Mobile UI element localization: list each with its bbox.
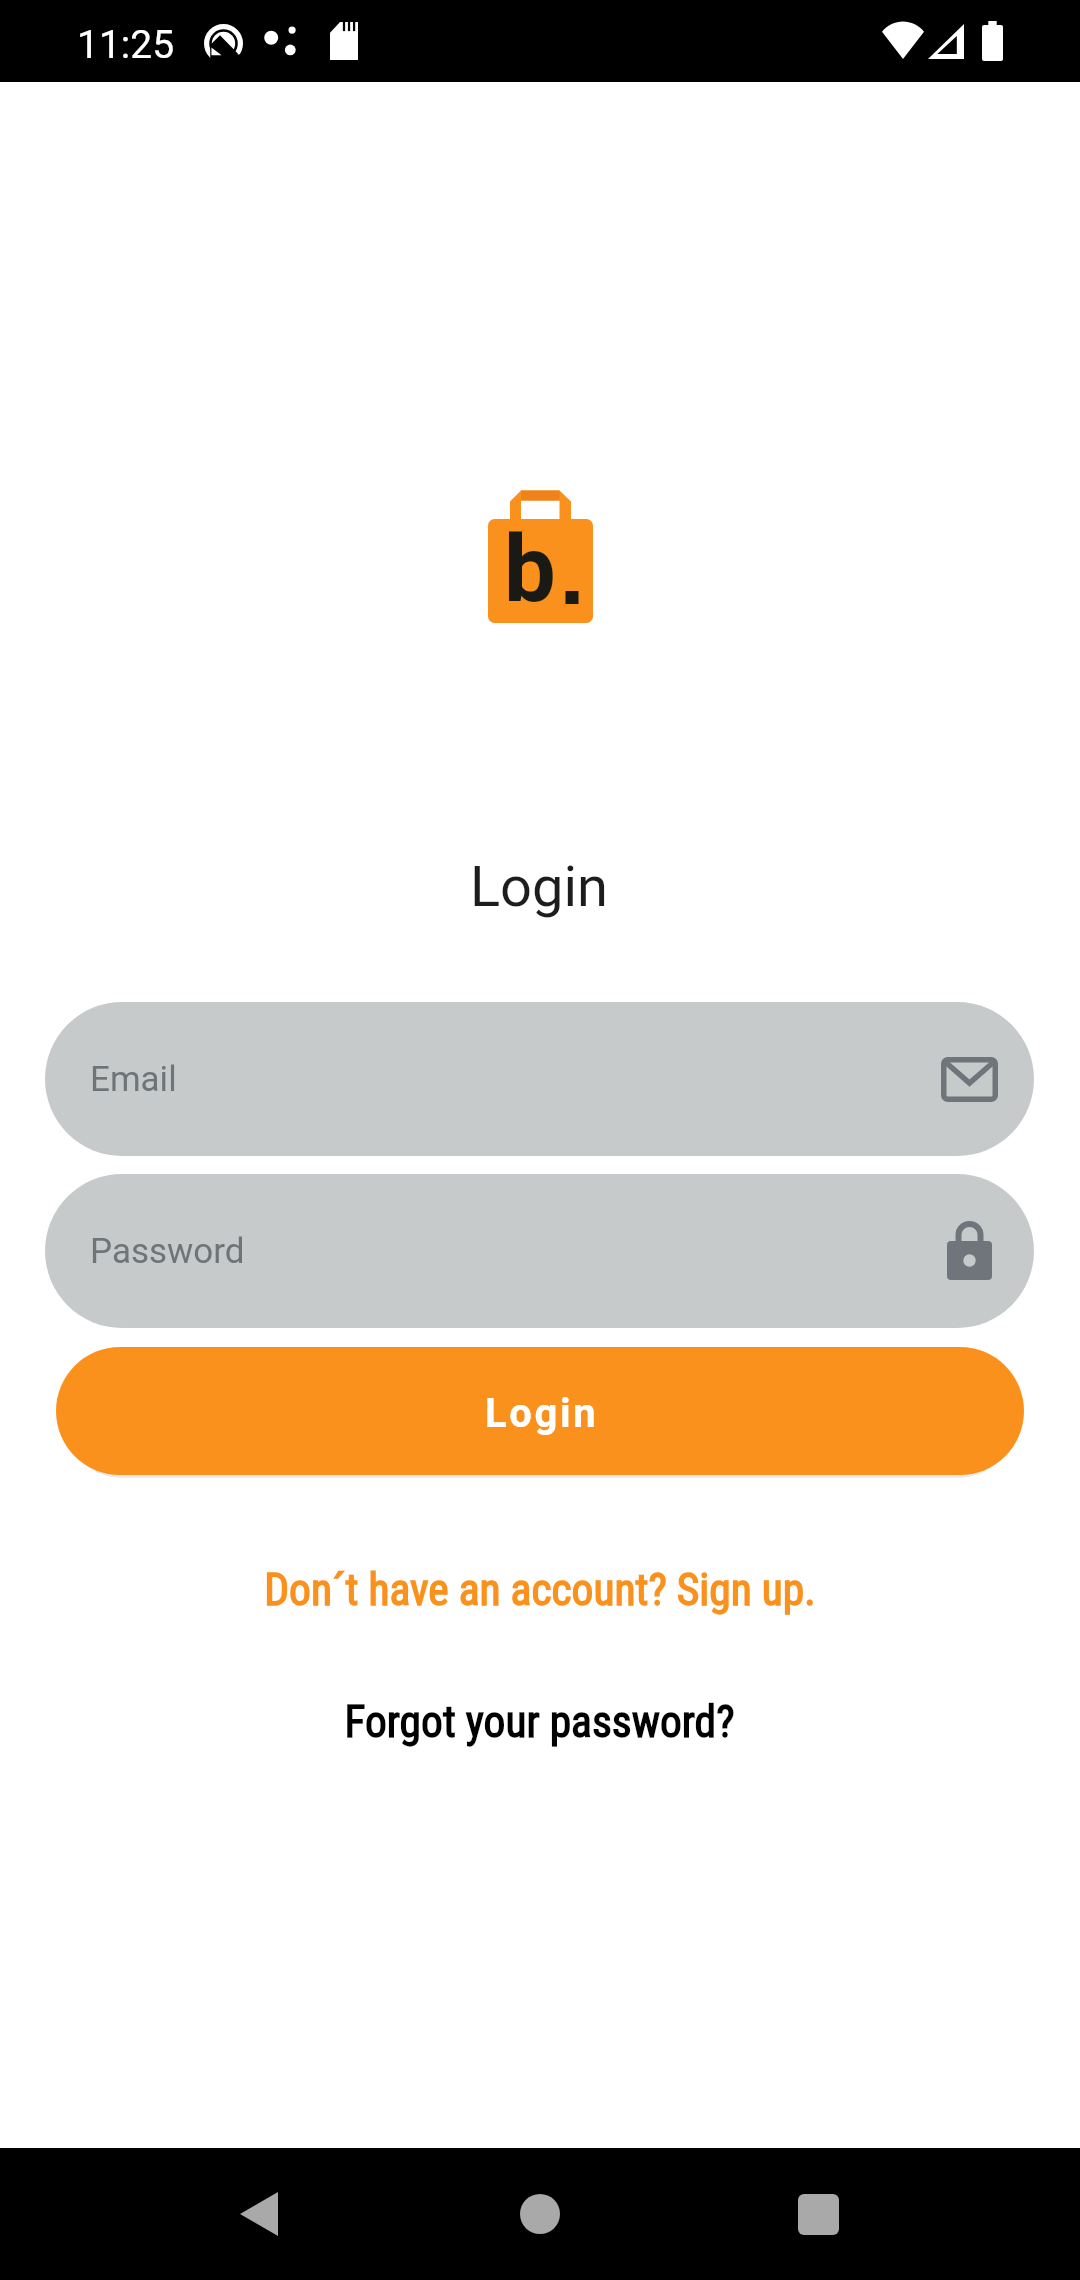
button[interactable]: Email	[45, 1002, 1034, 1156]
staticText: b	[504, 516, 556, 624]
button[interactable]: Recent apps	[758, 2154, 878, 2274]
button[interactable]: Home	[480, 2154, 600, 2274]
staticText: Don´t have an account? Sign up.	[264, 1565, 816, 1616]
staticText: 11:25	[77, 22, 175, 68]
staticText: Forgot your password?	[344, 1697, 735, 1748]
staticText: Login	[485, 1390, 599, 1437]
button[interactable]: Don´t have an account? Sign up.	[190, 1556, 890, 1624]
other: Email	[941, 1057, 998, 1102]
other: App logo	[488, 490, 593, 623]
staticText: Login	[0, 854, 1079, 920]
staticText: Email	[90, 1059, 177, 1100]
other: Password	[947, 1222, 992, 1280]
button[interactable]: Forgot your password?	[239, 1688, 839, 1756]
button[interactable]: Password	[45, 1174, 1034, 1328]
button[interactable]: Back	[199, 2154, 319, 2274]
staticText: Password	[90, 1231, 245, 1272]
button[interactable]: Login	[56, 1347, 1024, 1475]
